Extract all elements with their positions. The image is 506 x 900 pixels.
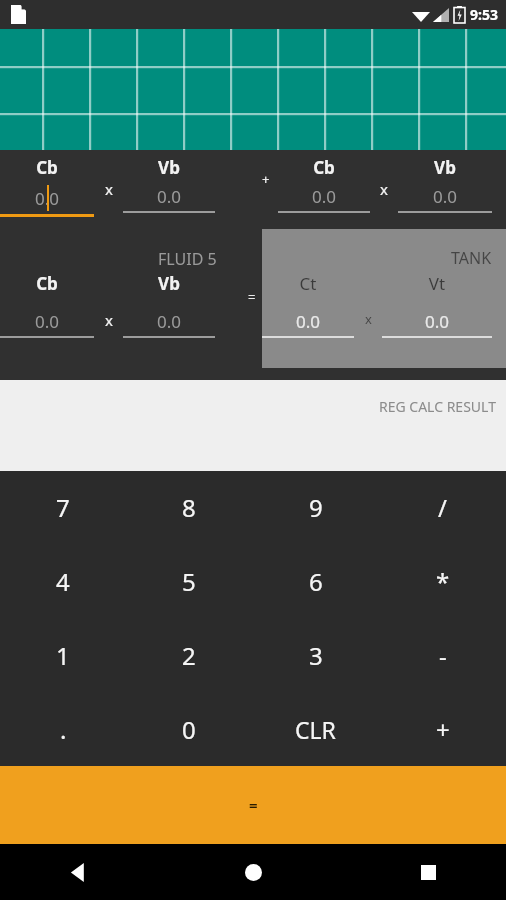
staticText: 0.0 bbox=[433, 185, 458, 208]
button[interactable]: 3 bbox=[252, 618, 379, 692]
staticText: FLUID 5 bbox=[158, 248, 217, 270]
staticText: x bbox=[105, 310, 113, 330]
button[interactable]: - bbox=[379, 618, 506, 692]
staticText: 0 bbox=[182, 713, 196, 746]
staticText: + bbox=[436, 713, 450, 746]
button[interactable]: . bbox=[0, 692, 126, 766]
staticText: x bbox=[380, 179, 388, 199]
staticText: 7 bbox=[56, 491, 70, 524]
button[interactable]: CLR bbox=[252, 692, 379, 766]
staticText: Vt bbox=[382, 272, 492, 295]
staticText: Vb bbox=[398, 156, 492, 179]
button[interactable]: * bbox=[379, 544, 506, 618]
staticText: 8 bbox=[182, 491, 196, 524]
staticText: Cb bbox=[278, 156, 370, 179]
staticText: x bbox=[365, 310, 372, 328]
button[interactable]: 0.0 bbox=[0, 185, 94, 217]
staticText: x bbox=[105, 179, 113, 199]
button[interactable]: 8 bbox=[126, 471, 252, 544]
staticText: 4 bbox=[56, 565, 70, 598]
staticText: 0.0 bbox=[296, 310, 321, 333]
staticText: - bbox=[439, 639, 447, 672]
button[interactable]: / bbox=[379, 471, 506, 544]
staticText: 9 bbox=[309, 491, 323, 524]
button[interactable]: 0.0 bbox=[382, 310, 492, 338]
button[interactable]: 9 bbox=[252, 471, 379, 544]
staticText: Cb bbox=[0, 272, 94, 295]
button[interactable]: 0.0 bbox=[123, 310, 215, 338]
button[interactable]: 0.0 bbox=[262, 310, 354, 338]
staticText: 0.0 bbox=[35, 187, 60, 210]
staticText: 0.0 bbox=[312, 185, 337, 208]
button[interactable]: REG CALC RESULT bbox=[0, 380, 506, 471]
button[interactable]: 0.0 bbox=[278, 185, 370, 213]
staticText: * bbox=[436, 565, 450, 598]
staticText: 9:53 bbox=[470, 5, 498, 24]
staticText: 0.0 bbox=[35, 310, 60, 333]
button[interactable]: Home bbox=[231, 850, 275, 894]
button[interactable]: 6 bbox=[252, 544, 379, 618]
button[interactable]: 4 bbox=[0, 544, 126, 618]
staticText: 3 bbox=[309, 639, 323, 672]
staticText: 1 bbox=[56, 639, 70, 672]
staticText: . bbox=[60, 713, 67, 746]
staticText: 0.0 bbox=[157, 310, 182, 333]
button[interactable]: 2 bbox=[126, 618, 252, 692]
staticText: REG CALC RESULT bbox=[379, 397, 496, 416]
button[interactable]: Recent apps bbox=[406, 850, 450, 894]
staticText: = bbox=[248, 288, 256, 306]
button[interactable]: 5 bbox=[126, 544, 252, 618]
staticText: 5 bbox=[182, 565, 196, 598]
button[interactable]: 0.0 bbox=[0, 310, 94, 338]
staticText: Vb bbox=[123, 156, 215, 179]
staticText: 2 bbox=[182, 639, 196, 672]
staticText: 0.0 bbox=[425, 310, 450, 333]
button[interactable]: 0.0 bbox=[123, 185, 215, 213]
staticText: Vb bbox=[123, 272, 215, 295]
staticText: Ct bbox=[262, 272, 354, 295]
button[interactable]: + bbox=[379, 692, 506, 766]
button[interactable]: 1 bbox=[0, 618, 126, 692]
staticText: = bbox=[249, 795, 258, 815]
button[interactable]: = bbox=[0, 766, 506, 844]
staticText: / bbox=[438, 491, 447, 524]
staticText: 0.0 bbox=[157, 185, 182, 208]
staticText: Cb bbox=[0, 156, 94, 179]
button[interactable]: Back bbox=[56, 850, 100, 894]
button[interactable]: 7 bbox=[0, 471, 126, 544]
staticText: TANK bbox=[451, 247, 492, 269]
button[interactable]: 0 bbox=[126, 692, 252, 766]
staticText: + bbox=[262, 170, 270, 188]
staticText: 6 bbox=[309, 565, 323, 598]
staticText: CLR bbox=[295, 714, 336, 745]
button[interactable]: 0.0 bbox=[398, 185, 492, 213]
